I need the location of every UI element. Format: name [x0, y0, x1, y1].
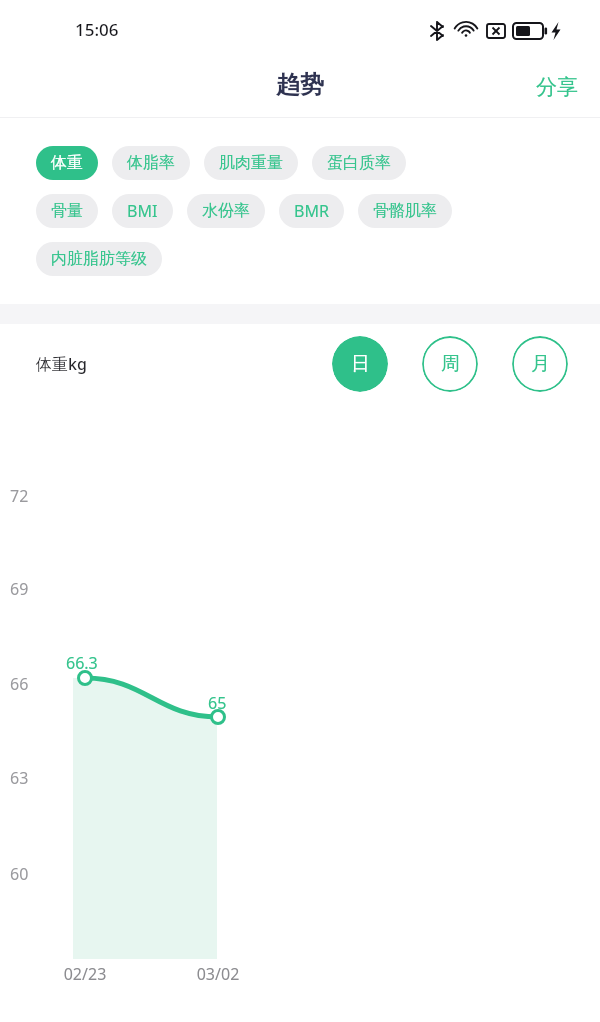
staticText: 骨骼肌率 [373, 201, 437, 221]
staticText: 60 [10, 863, 29, 885]
button[interactable]: 骨骼肌率 [358, 194, 452, 228]
staticText: 15:06 [75, 18, 119, 41]
staticText: 蛋白质率 [327, 153, 391, 173]
staticText: 骨量 [51, 201, 83, 221]
staticText: 周 [441, 352, 460, 376]
button[interactable]: 蛋白质率 [312, 146, 406, 180]
staticText: 65 [208, 692, 227, 714]
staticText: 肌肉重量 [219, 153, 283, 173]
button[interactable]: 水份率 [187, 194, 265, 228]
button[interactable]: 体重 [36, 146, 98, 180]
button[interactable]: 月 [512, 336, 568, 392]
button[interactable]: BMI [112, 194, 173, 228]
button[interactable]: 骨量 [36, 194, 98, 228]
staticText: 趋势 [276, 70, 324, 100]
staticText: 66 [10, 673, 29, 695]
button[interactable]: 体脂率 [112, 146, 190, 180]
staticText: BMI [127, 200, 158, 222]
button[interactable]: BMR [279, 194, 344, 228]
staticText: 02/23 [51, 963, 119, 985]
staticText: 内脏脂肪等级 [51, 249, 147, 269]
staticText: 69 [10, 578, 29, 600]
staticText: 体重kg [36, 353, 87, 375]
button[interactable]: 周 [422, 336, 478, 392]
staticText: 63 [10, 767, 29, 789]
staticText: 03/02 [184, 963, 252, 985]
staticText: 66.3 [66, 652, 98, 674]
staticText: 体重 [51, 153, 83, 173]
staticText: 体脂率 [127, 153, 175, 173]
button[interactable]: 肌肉重量 [204, 146, 298, 180]
button[interactable]: 内脏脂肪等级 [36, 242, 162, 276]
button[interactable]: 日 [332, 336, 388, 392]
staticText: BMR [294, 200, 329, 222]
button[interactable]: 分享 [514, 62, 600, 112]
staticText: 72 [10, 485, 29, 507]
staticText: 分享 [536, 74, 578, 100]
staticText: 月 [531, 352, 550, 376]
staticText: 水份率 [202, 201, 250, 221]
staticText: 日 [351, 352, 370, 376]
